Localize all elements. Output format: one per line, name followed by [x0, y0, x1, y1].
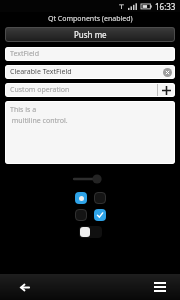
staticText: TextField	[10, 49, 39, 59]
button[interactable]: Add	[158, 83, 175, 97]
staticText: Qt Components (enabled)	[48, 14, 133, 24]
button[interactable]: Switch	[79, 226, 102, 238]
button[interactable]: This is a	[5, 101, 175, 164]
staticText: This is a	[10, 105, 37, 115]
button[interactable]: Checkbox unchecked	[75, 209, 87, 221]
button[interactable]: Custom operation	[5, 83, 175, 97]
button[interactable]: Slider	[68, 172, 112, 186]
button[interactable]: Push me	[5, 27, 175, 42]
button[interactable]: Clearable TextField	[5, 65, 175, 79]
staticText: 16:33	[155, 1, 176, 12]
button[interactable]: Menu	[140, 274, 180, 300]
staticText: Custom operation	[10, 85, 70, 95]
button[interactable]: Back	[0, 274, 48, 300]
button[interactable]: Checkbox checked	[94, 209, 106, 221]
button[interactable]: Radio unselected	[94, 192, 106, 204]
button[interactable]: TextField	[5, 47, 175, 61]
staticText: Push me	[74, 29, 107, 40]
button[interactable]: Clear text	[163, 68, 172, 77]
button[interactable]: Radio selected	[75, 192, 87, 204]
staticText: multiline control.	[10, 116, 68, 126]
staticText: Clearable TextField	[10, 67, 72, 77]
